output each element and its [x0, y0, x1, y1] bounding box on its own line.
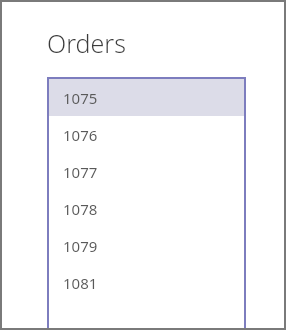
button[interactable]: 1075 — [49, 79, 244, 116]
staticText: 1078 — [63, 199, 98, 219]
staticText: 1079 — [63, 236, 98, 256]
staticText: 1077 — [63, 162, 98, 182]
button[interactable]: 1079 — [49, 227, 244, 264]
button[interactable]: 1076 — [49, 116, 244, 153]
button[interactable]: 1077 — [49, 153, 244, 190]
staticText: 1076 — [63, 125, 98, 145]
button[interactable]: 1081 — [49, 264, 244, 301]
staticText: 1081 — [63, 273, 98, 293]
staticText: 1075 — [63, 88, 98, 108]
staticText: Orders — [47, 26, 126, 60]
button[interactable]: 1078 — [49, 190, 244, 227]
